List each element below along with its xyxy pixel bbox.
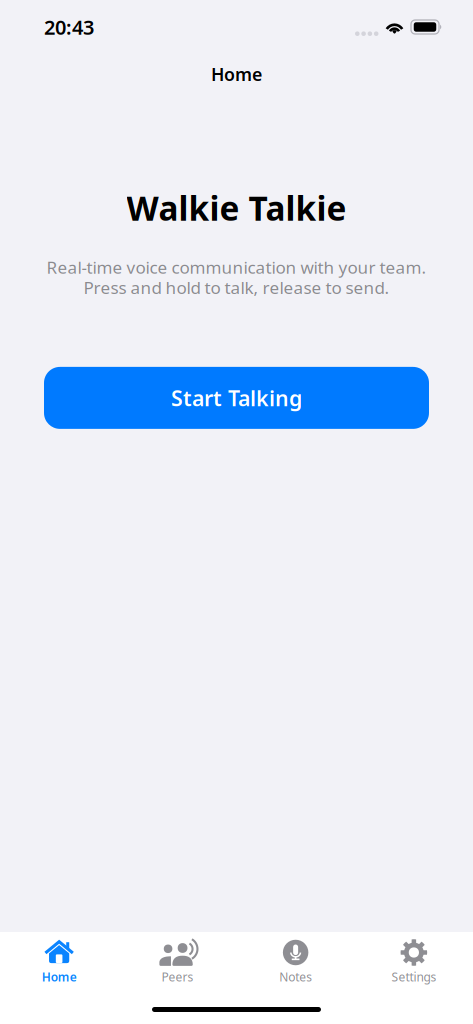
button[interactable]: Settings xyxy=(355,932,473,985)
staticText: Walkie Talkie xyxy=(126,185,346,230)
staticText: Peers xyxy=(161,969,193,985)
button[interactable]: Start Talking xyxy=(44,367,429,429)
staticText: Home xyxy=(211,62,262,86)
staticText: Press and hold to talk, release to send. xyxy=(83,276,389,299)
staticText: Home xyxy=(42,969,77,985)
button[interactable]: Notes xyxy=(236,932,355,985)
staticText: Start Talking xyxy=(171,384,302,412)
staticText: Real-time voice communication with your … xyxy=(46,255,426,279)
staticText: 20:43 xyxy=(44,14,94,40)
staticText: Settings xyxy=(391,969,436,985)
button[interactable]: Peers xyxy=(118,932,236,985)
button[interactable]: Home xyxy=(0,932,118,985)
staticText: Notes xyxy=(279,969,312,985)
